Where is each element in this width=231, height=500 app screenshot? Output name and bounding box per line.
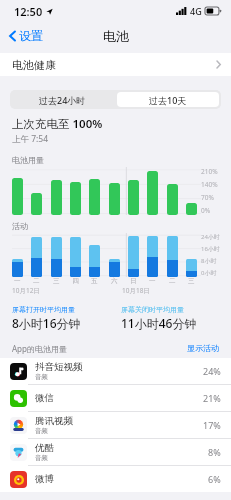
staticText: 6% bbox=[208, 473, 221, 485]
button[interactable]: 优酷 bbox=[0, 439, 231, 465]
staticText: 过去10天 bbox=[149, 94, 187, 106]
staticText: 电池 bbox=[103, 28, 129, 44]
staticText: 显示活动 bbox=[187, 343, 219, 353]
staticText: 屏幕关闭时平均用量 bbox=[121, 305, 184, 314]
staticText: 活动 bbox=[12, 221, 28, 231]
staticText: 0% bbox=[201, 206, 211, 215]
staticText: 屏幕打开时平均用量 bbox=[12, 305, 75, 314]
button[interactable]: 电池健康 bbox=[0, 53, 231, 76]
staticText: 六 bbox=[111, 277, 118, 285]
staticText: 0小时 bbox=[201, 269, 217, 277]
staticText: 微信 bbox=[35, 392, 54, 404]
staticText: 三 bbox=[53, 277, 60, 285]
button[interactable]: 过去10天 bbox=[117, 92, 219, 107]
staticText: 21% bbox=[203, 392, 221, 404]
staticText: 音频 bbox=[35, 427, 48, 435]
staticText: 8小时16分钟 bbox=[12, 315, 81, 331]
button[interactable]: 腾讯视频 bbox=[0, 412, 231, 438]
staticText: 16小时 bbox=[201, 245, 220, 253]
staticText: 8小时 bbox=[201, 257, 217, 265]
staticText: 抖音短视频 bbox=[35, 361, 83, 373]
button[interactable]: 显示活动 bbox=[185, 341, 221, 355]
staticText: 4G bbox=[190, 5, 202, 17]
staticText: 一 bbox=[14, 277, 21, 285]
button[interactable]: 微信 bbox=[0, 385, 231, 411]
staticText: 8% bbox=[208, 446, 221, 458]
staticText: 140% bbox=[201, 180, 218, 189]
staticText: 10月18日 bbox=[122, 286, 150, 295]
staticText: 音频 bbox=[35, 373, 48, 381]
staticText: 腾讯视频 bbox=[35, 415, 73, 427]
staticText: 上次充电至 100% bbox=[12, 116, 103, 132]
staticText: 电池健康 bbox=[12, 58, 56, 72]
staticText: 17% bbox=[203, 419, 221, 431]
staticText: 三 bbox=[188, 277, 195, 285]
button[interactable]: 过去24小时 bbox=[10, 90, 115, 109]
staticText: 上午 7:54 bbox=[12, 133, 49, 145]
staticText: 音频 bbox=[35, 454, 48, 462]
button[interactable]: 设置 bbox=[7, 25, 45, 46]
staticText: 电池用量 bbox=[12, 155, 44, 165]
staticText: 设置 bbox=[19, 28, 43, 43]
staticText: 70% bbox=[201, 193, 214, 202]
staticText: App的电池用量 bbox=[12, 343, 67, 354]
button[interactable]: 微博 bbox=[0, 466, 231, 492]
staticText: 10月12日 bbox=[12, 286, 40, 295]
staticText: 二 bbox=[169, 277, 176, 285]
staticText: 二 bbox=[33, 277, 40, 285]
staticText: 微博 bbox=[35, 473, 54, 485]
staticText: 210% bbox=[201, 167, 218, 176]
staticText: 一 bbox=[149, 277, 156, 285]
staticText: 12:50 bbox=[14, 4, 43, 19]
staticText: 四 bbox=[72, 277, 79, 285]
button[interactable]: 抖音短视频 bbox=[0, 358, 231, 384]
staticText: 优酷 bbox=[35, 442, 54, 454]
staticText: 日 bbox=[130, 277, 137, 285]
staticText: 11小时46分钟 bbox=[121, 315, 197, 331]
staticText: 24% bbox=[203, 365, 221, 377]
staticText: 24小时 bbox=[201, 233, 220, 241]
staticText: 过去24小时 bbox=[39, 94, 86, 106]
staticText: 五 bbox=[91, 277, 98, 285]
